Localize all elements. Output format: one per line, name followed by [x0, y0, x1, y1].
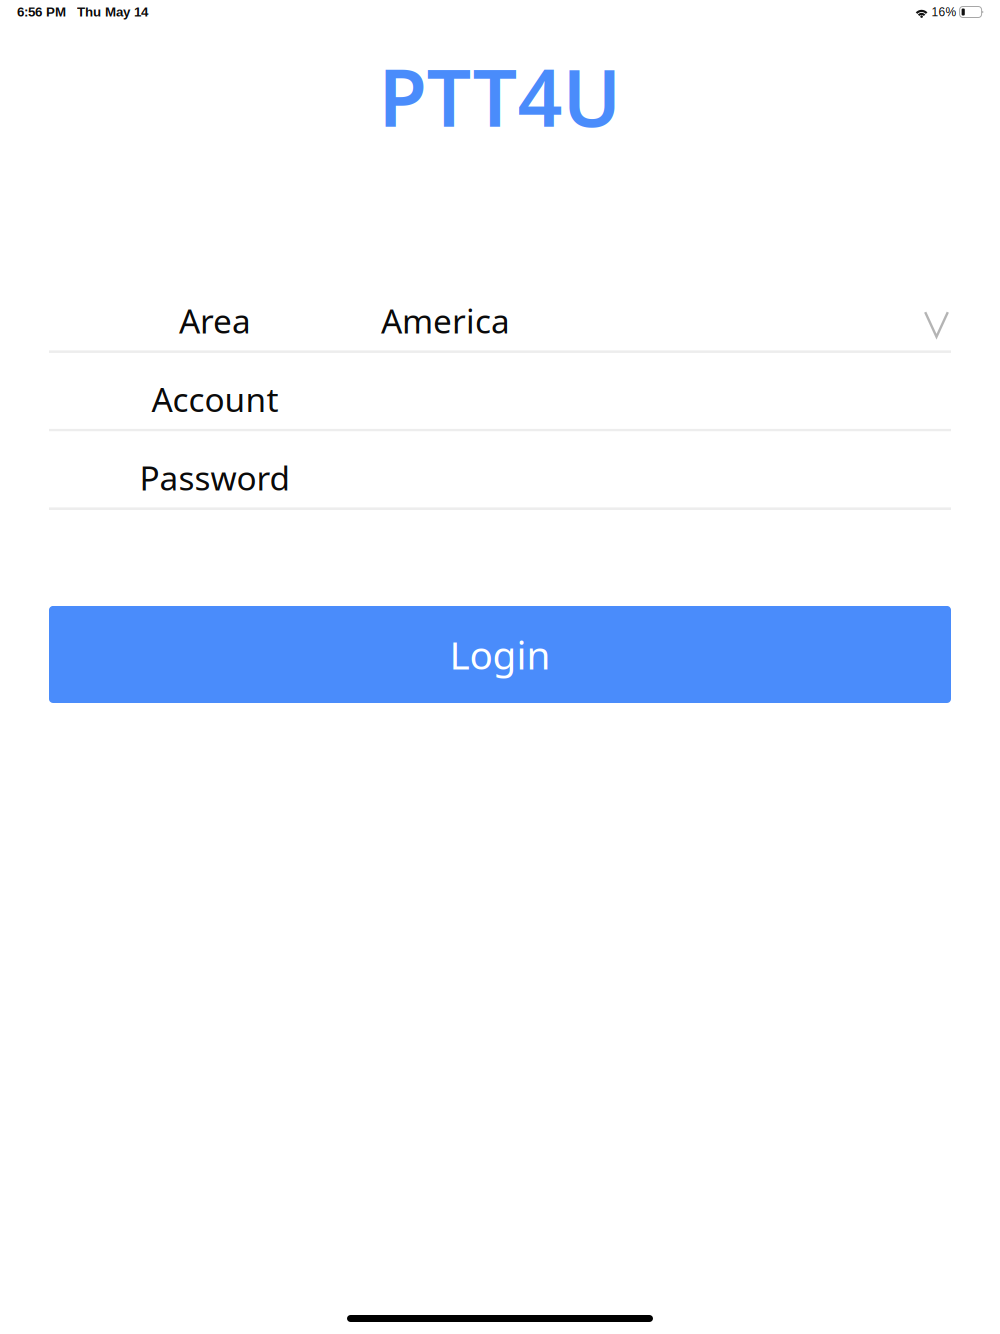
button[interactable]: Account: [0, 353, 1000, 429]
staticText: PTT4U: [378, 44, 621, 148]
staticText: Area: [179, 298, 251, 343]
staticText: 6:56 PM: [17, 5, 66, 19]
staticText: America: [381, 298, 510, 343]
button[interactable]: Login: [49, 606, 951, 703]
staticText: Thu May 14: [77, 5, 148, 19]
button[interactable]: Password: [0, 431, 1000, 507]
button[interactable]: Area: [0, 274, 1000, 350]
staticText: Account: [151, 377, 278, 421]
staticText: Login: [449, 629, 550, 680]
staticText: Password: [139, 455, 290, 500]
staticText: 16%: [932, 5, 957, 19]
